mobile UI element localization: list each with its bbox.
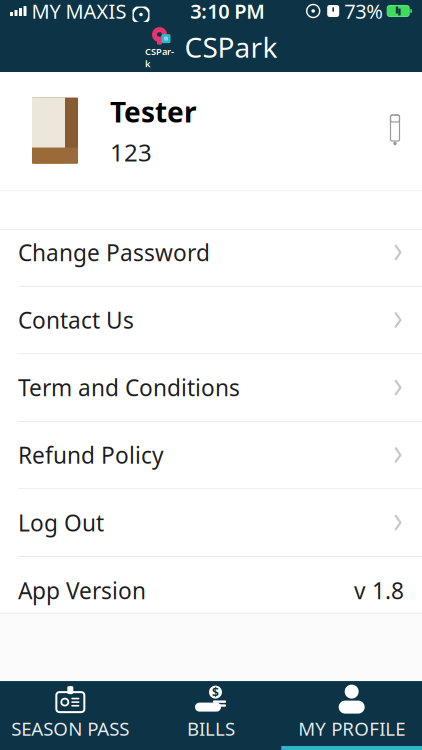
- staticText: MY PROFILE: [298, 716, 405, 741]
- staticText: Tester: [110, 93, 197, 130]
- staticText: 3:10 PM: [190, 0, 265, 24]
- staticText: Log Out: [18, 507, 104, 538]
- staticText: 73%: [344, 0, 383, 24]
- staticText: $: [212, 684, 219, 700]
- staticText: v 1.8: [354, 575, 404, 605]
- button[interactable]: Term and Conditions: [0, 365, 422, 433]
- button[interactable]: Edit profile: [368, 100, 422, 160]
- staticText: CSPark: [145, 45, 174, 70]
- button[interactable]: $: [141, 682, 281, 750]
- staticText: Change Password: [18, 237, 210, 267]
- staticText: MY MAXIS: [31, 0, 126, 24]
- button[interactable]: Refund Policy: [0, 433, 422, 500]
- button[interactable]: Contact Us: [0, 298, 422, 365]
- button[interactable]: SEASON PASS: [0, 682, 141, 750]
- staticText: Term and Conditions: [18, 372, 240, 403]
- staticText: SEASON PASS: [11, 716, 129, 741]
- staticText: 123: [110, 136, 152, 168]
- staticText: App Version: [18, 575, 146, 605]
- staticText: Contact Us: [18, 305, 134, 335]
- button[interactable]: Log Out: [0, 500, 422, 568]
- staticText: BILLS: [187, 716, 235, 741]
- staticText: CSPark: [184, 28, 277, 66]
- button[interactable]: MY PROFILE: [281, 682, 422, 750]
- staticText: Refund Policy: [18, 440, 164, 470]
- button[interactable]: Change Password: [0, 230, 422, 298]
